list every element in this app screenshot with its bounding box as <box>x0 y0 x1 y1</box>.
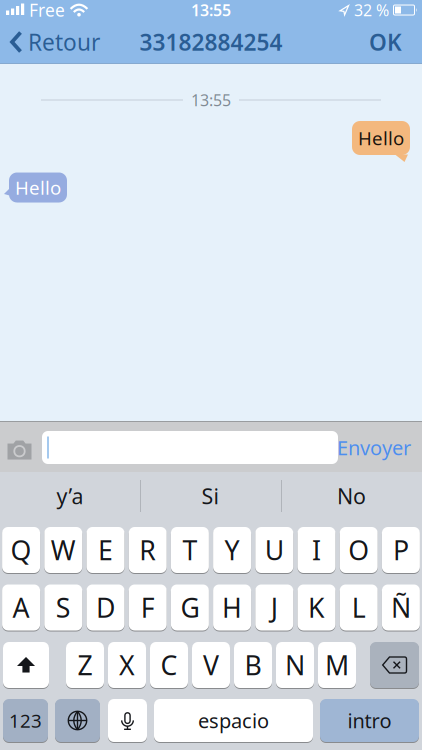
staticText: espacio <box>198 707 269 734</box>
button[interactable]: C <box>150 642 188 688</box>
button[interactable]: W <box>44 527 82 573</box>
staticText: 13:55 <box>191 0 231 21</box>
button[interactable]: E <box>86 527 124 573</box>
button[interactable]: Ñ <box>382 584 420 630</box>
button[interactable]: Retour <box>0 20 100 64</box>
button[interactable]: No <box>281 472 422 520</box>
staticText: O <box>348 532 369 568</box>
button[interactable]: X <box>108 642 146 688</box>
staticText: B <box>244 647 261 683</box>
staticText: C <box>160 647 177 683</box>
button[interactable]: G <box>171 584 209 630</box>
button[interactable]: OK <box>369 20 422 64</box>
button[interactable]: B <box>234 642 272 688</box>
button[interactable]: H <box>213 584 251 630</box>
staticText: intro <box>347 707 391 734</box>
button[interactable]: 123 <box>3 699 48 742</box>
staticText: R <box>139 532 156 568</box>
button[interactable]: M <box>318 642 356 688</box>
button[interactable]: T <box>171 527 209 573</box>
button[interactable]: Si <box>140 472 281 520</box>
button[interactable]: Q <box>2 527 40 573</box>
staticText: Hello <box>358 126 404 150</box>
staticText: K <box>308 590 325 625</box>
staticText: T <box>182 532 197 568</box>
button[interactable]: O <box>340 527 378 573</box>
button[interactable]: U <box>255 527 293 573</box>
button[interactable]: K <box>297 584 335 630</box>
staticText: P <box>393 532 409 568</box>
button[interactable]: Photo <box>3 431 36 469</box>
staticText: S <box>56 590 71 625</box>
button[interactable]: intro <box>320 699 419 742</box>
staticText: Hello <box>15 175 61 200</box>
staticText: J <box>271 590 278 625</box>
staticText: G <box>180 590 199 625</box>
staticText: X <box>119 647 135 683</box>
staticText: OK <box>369 27 402 57</box>
staticText: U <box>265 532 284 568</box>
staticText: y’a <box>56 482 83 510</box>
staticText: N <box>285 647 305 683</box>
button[interactable]: P <box>382 527 420 573</box>
button[interactable]: Delete <box>370 642 419 688</box>
staticText: L <box>352 590 366 625</box>
button[interactable]: R <box>129 527 167 573</box>
staticText: 13:55 <box>191 89 231 111</box>
button[interactable]: F <box>129 584 167 630</box>
staticText: H <box>222 590 242 625</box>
staticText: 33182884254 <box>139 27 282 57</box>
button[interactable]: Y <box>213 527 251 573</box>
staticText: V <box>203 647 219 683</box>
button[interactable]: Envoyer <box>328 428 420 466</box>
button[interactable]: Message <box>42 431 338 464</box>
staticText: A <box>13 590 30 625</box>
button[interactable]: V <box>192 642 230 688</box>
staticText: Retour <box>28 27 100 57</box>
staticText: E <box>98 532 113 568</box>
button[interactable]: S <box>44 584 82 630</box>
button[interactable]: N <box>276 642 314 688</box>
button[interactable]: J <box>255 584 293 630</box>
staticText: M <box>325 647 349 683</box>
staticText: W <box>51 532 76 568</box>
staticText: Y <box>225 532 240 568</box>
button[interactable]: Z <box>66 642 104 688</box>
staticText: Si <box>201 482 219 510</box>
button[interactable]: Dictate <box>108 699 147 742</box>
staticText: Z <box>77 647 92 683</box>
staticText: Free <box>29 0 65 21</box>
staticText: No <box>337 482 366 510</box>
staticText: Ñ <box>391 590 411 625</box>
button[interactable]: I <box>297 527 335 573</box>
staticText: F <box>141 590 155 625</box>
staticText: I <box>312 532 321 568</box>
button[interactable]: Next keyboard <box>55 699 100 742</box>
staticText: Envoyer <box>337 434 411 461</box>
staticText: D <box>96 590 115 625</box>
button[interactable]: L <box>340 584 378 630</box>
button[interactable]: Shift <box>3 642 49 688</box>
button[interactable]: D <box>86 584 124 630</box>
staticText: 32 % <box>354 0 389 21</box>
staticText: 123 <box>9 708 42 733</box>
button[interactable]: A <box>2 584 40 630</box>
button[interactable]: y’a <box>0 472 140 520</box>
button[interactable]: espacio <box>154 699 313 742</box>
staticText: Q <box>11 532 32 568</box>
